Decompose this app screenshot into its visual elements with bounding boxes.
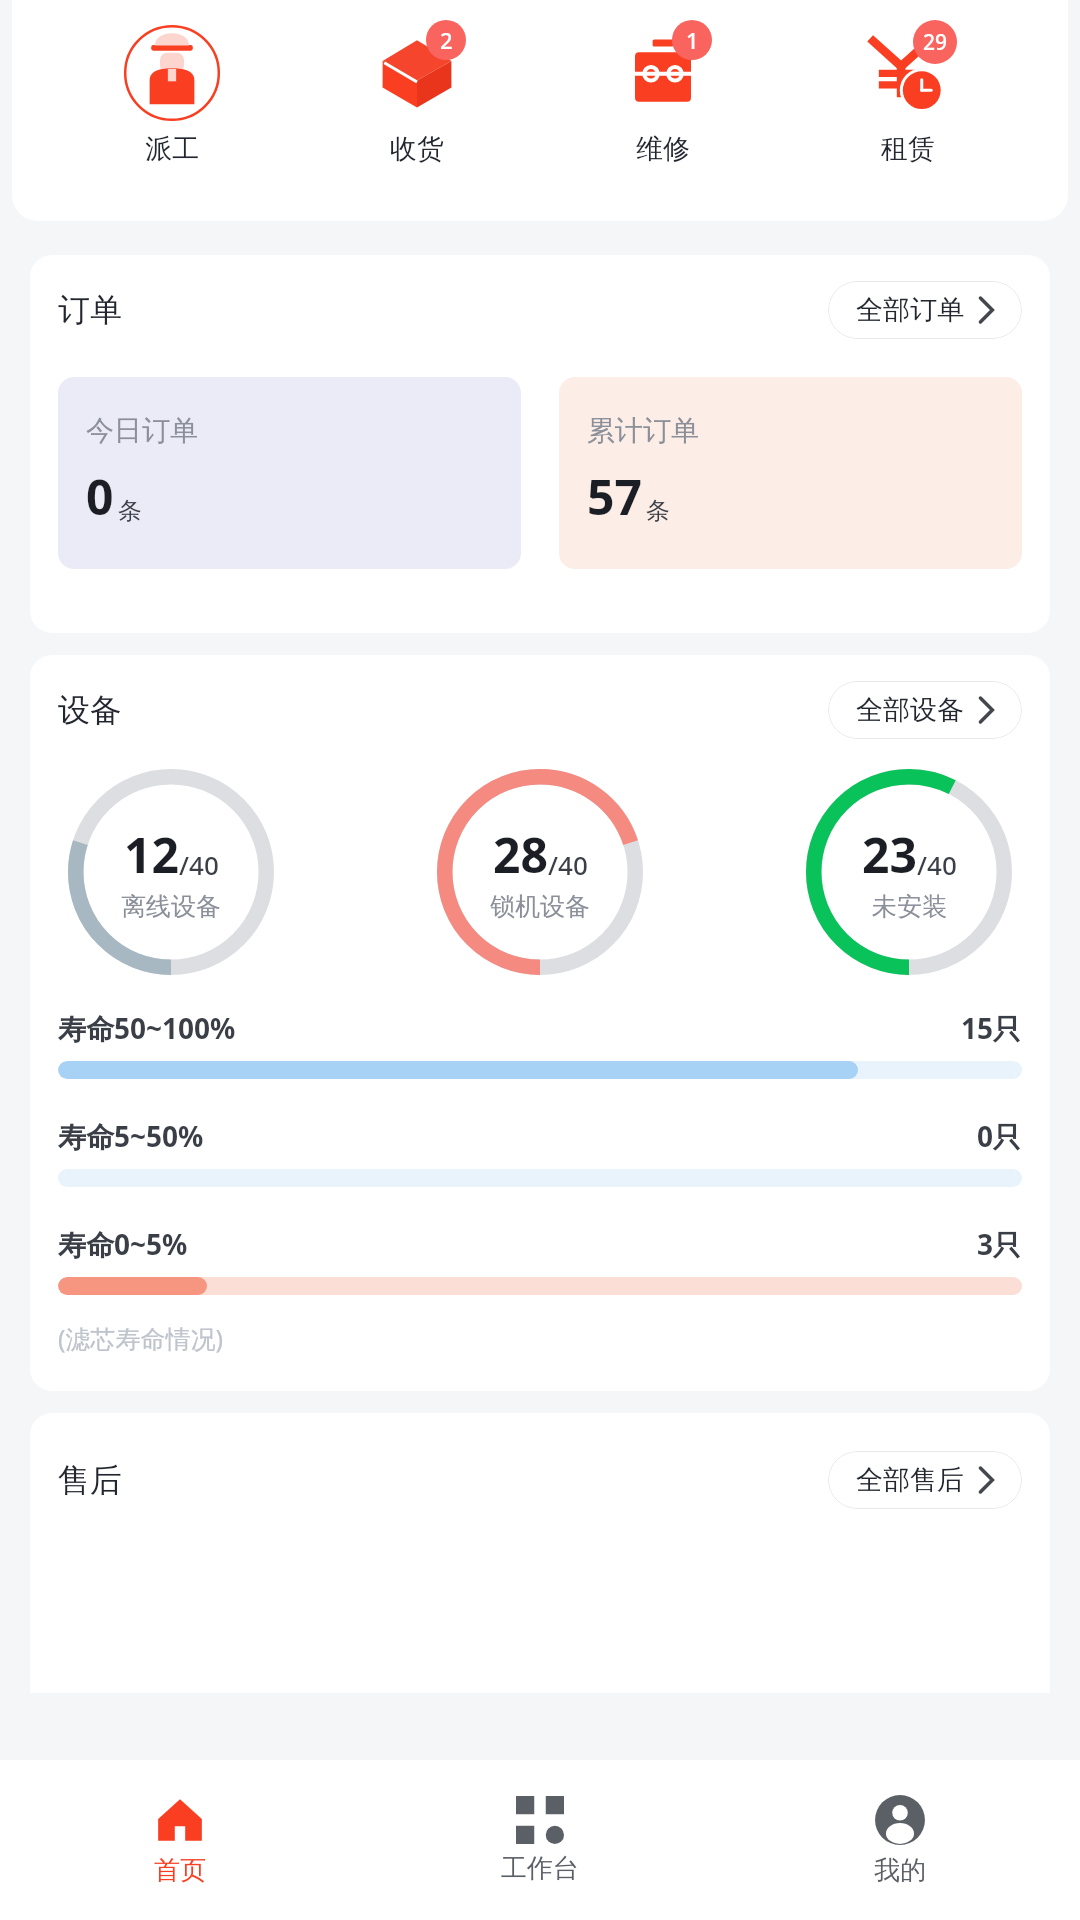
staticText: 全部订单	[856, 293, 964, 327]
staticText: 全部设备	[856, 693, 964, 727]
staticText: (滤芯寿命情况)	[58, 1321, 224, 1355]
staticText: 累计订单	[587, 413, 699, 448]
staticText: /40	[548, 847, 588, 882]
staticText: 寿命0~5%	[58, 1225, 188, 1263]
staticText: 条	[118, 496, 142, 526]
button[interactable]: 维修	[578, 18, 748, 166]
staticText: 寿命5~50%	[58, 1117, 204, 1155]
button[interactable]: 12	[68, 769, 274, 975]
staticText: 派工	[145, 132, 199, 166]
staticText: 首页	[154, 1854, 206, 1887]
staticText: 锁机设备	[490, 891, 590, 922]
button[interactable]: 首页	[0, 1760, 360, 1920]
other: 维修	[623, 33, 703, 113]
staticText: 12	[124, 822, 179, 887]
button[interactable]: 全部订单	[828, 281, 1022, 339]
other: 租赁	[865, 30, 951, 116]
button[interactable]: 租赁	[823, 18, 993, 166]
button[interactable]: 全部售后	[828, 1451, 1022, 1509]
button[interactable]: 工作台	[360, 1760, 720, 1920]
staticText: 设备	[58, 690, 122, 730]
button[interactable]: 累计订单	[559, 377, 1022, 569]
staticText: 未安装	[872, 891, 947, 922]
staticText: 28	[493, 822, 548, 887]
staticText: 我的	[874, 1854, 926, 1887]
staticText: 0只	[977, 1117, 1022, 1155]
staticText: 离线设备	[121, 891, 221, 922]
staticText: 3只	[977, 1225, 1022, 1263]
button[interactable]: 收货	[332, 18, 502, 166]
staticText: 15只	[961, 1009, 1022, 1047]
staticText: 租赁	[881, 132, 935, 166]
staticText: /40	[917, 847, 957, 882]
staticText: 寿命50~100%	[58, 1009, 236, 1047]
staticText: 订单	[58, 290, 122, 330]
staticText: 0	[86, 464, 114, 529]
staticText: 全部售后	[856, 1463, 964, 1497]
staticText: 2	[440, 25, 453, 55]
staticText: 1	[686, 25, 699, 55]
staticText: 条	[646, 496, 670, 526]
staticText: 收货	[390, 132, 444, 166]
button[interactable]: 派工	[87, 18, 257, 166]
other: 派工	[120, 21, 224, 125]
staticText: 29	[923, 28, 948, 57]
button[interactable]: 23	[806, 769, 1012, 975]
staticText: /40	[179, 847, 219, 882]
staticText: 今日订单	[86, 413, 198, 448]
staticText: 售后	[58, 1460, 122, 1500]
other: 收货	[374, 30, 460, 116]
staticText: 23	[862, 822, 917, 887]
button[interactable]: 全部设备	[828, 681, 1022, 739]
staticText: 工作台	[501, 1852, 579, 1885]
button[interactable]: 28	[437, 769, 643, 975]
button[interactable]: 今日订单	[58, 377, 521, 569]
staticText: 57	[587, 464, 642, 529]
button[interactable]: 我的	[720, 1760, 1080, 1920]
staticText: 维修	[636, 132, 690, 166]
